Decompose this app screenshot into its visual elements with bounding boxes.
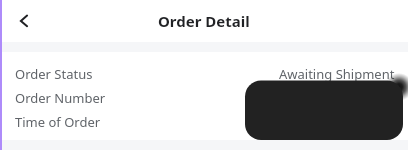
button[interactable]: Order status detail xyxy=(245,80,403,140)
button[interactable]: Order Status xyxy=(0,62,408,86)
staticText: Order Detail xyxy=(158,11,250,31)
button[interactable]: Back xyxy=(8,5,40,37)
staticText: Order Status xyxy=(15,65,93,83)
staticText: Order Number xyxy=(15,89,106,107)
button[interactable]: Order Number xyxy=(0,86,408,110)
button[interactable]: Time of Order xyxy=(0,110,408,134)
staticText: Awaiting Shipment xyxy=(279,65,395,83)
staticText: Time of Order xyxy=(15,113,101,131)
